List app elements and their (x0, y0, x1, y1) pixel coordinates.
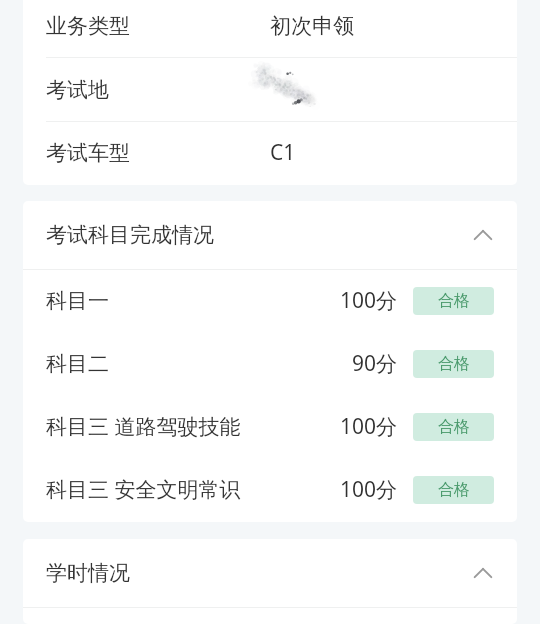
staticText: 考试车型 (46, 140, 130, 166)
button[interactable]: 科目三 安全文明常识 (23, 459, 517, 522)
staticText: 考试科目完成情况 (46, 222, 214, 248)
staticText: 合格 (438, 354, 470, 374)
other: 考试地（已隐藏） (256, 67, 318, 109)
button[interactable]: 科目三 道路驾驶技能 (23, 396, 517, 459)
other: Collapse (466, 218, 500, 252)
staticText: 合格 (438, 417, 470, 437)
staticText: C1 (270, 138, 296, 167)
staticText: 合格 (438, 480, 470, 500)
staticText: 考试地 (46, 77, 109, 103)
staticText: 100分 (339, 286, 397, 315)
button[interactable]: 考试车型 (23, 122, 517, 185)
staticText: 科目三 安全文明常识 (46, 475, 241, 504)
button[interactable]: 考试科目完成情况 (23, 201, 517, 269)
staticText: 100分 (339, 475, 397, 504)
staticText: 合格 (438, 291, 470, 311)
button[interactable]: 考试地 (23, 58, 517, 121)
staticText: 科目二 (46, 351, 109, 377)
staticText: 科目一 (46, 288, 109, 314)
button[interactable]: 科目二 (23, 333, 517, 396)
staticText: 学时情况 (46, 560, 130, 586)
staticText: 科目三 道路驾驶技能 (46, 412, 241, 441)
other: Collapse (466, 556, 500, 590)
staticText: 初次申领 (270, 13, 354, 39)
staticText: 100分 (339, 412, 397, 441)
button[interactable]: 科目一 (23, 270, 517, 333)
button[interactable]: 业务类型 (23, 0, 517, 57)
staticText: 业务类型 (46, 13, 130, 39)
button[interactable]: 学时情况 (23, 539, 517, 607)
staticText: 90分 (351, 349, 397, 378)
